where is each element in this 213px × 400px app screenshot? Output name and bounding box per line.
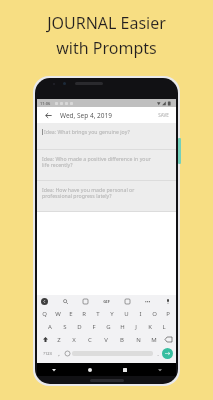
button[interactable]: E (64, 307, 77, 320)
staticText: O (152, 310, 157, 318)
staticText: , (58, 350, 60, 358)
button[interactable]: J (129, 320, 143, 333)
button[interactable]: B (114, 333, 130, 346)
button[interactable]: Period (153, 346, 162, 361)
button[interactable]: Home (85, 365, 94, 374)
staticText: C (88, 336, 92, 344)
staticText: M (151, 336, 157, 344)
button[interactable]: Shift (39, 333, 51, 346)
staticText: X (72, 336, 76, 344)
button[interactable]: W (51, 307, 64, 320)
button[interactable]: ⋯ (144, 297, 152, 306)
staticText: B (120, 336, 124, 344)
button[interactable]: Recents (120, 365, 129, 374)
button[interactable]: ?123 (40, 346, 54, 361)
button[interactable]: Idea: What brings you genuine joy? (37, 123, 176, 149)
button[interactable]: X (66, 333, 82, 346)
button[interactable]: Stickers (81, 297, 89, 305)
staticText: D (77, 323, 82, 331)
button[interactable]: U (119, 307, 133, 320)
button[interactable]: Back (49, 365, 58, 374)
button[interactable]: F (87, 320, 101, 333)
staticText: W (55, 310, 61, 318)
staticText: ⋯ (145, 298, 151, 305)
staticText: H (120, 323, 125, 331)
button[interactable]: Voice input (164, 297, 172, 305)
staticText: Idea: How have you made personal or prof… (42, 186, 135, 200)
button[interactable]: V (98, 333, 114, 346)
staticText: R (82, 310, 86, 318)
button[interactable]: D (72, 320, 87, 333)
button[interactable]: Y (105, 307, 119, 320)
staticText: U (124, 310, 129, 318)
button[interactable]: R (77, 307, 91, 320)
button[interactable]: K (143, 320, 157, 333)
button[interactable]: Idea: How have you made personal or prof… (37, 181, 176, 211)
button[interactable]: Comma (54, 346, 63, 361)
button[interactable]: Q (38, 307, 51, 320)
staticText: E (69, 310, 73, 318)
button[interactable]: Enter (162, 348, 173, 359)
staticText: S (63, 323, 67, 331)
button[interactable]: T (91, 307, 105, 320)
staticText: J (135, 323, 137, 331)
staticText: . (157, 350, 159, 358)
staticText: I (139, 310, 142, 318)
button[interactable]: H (115, 320, 129, 333)
staticText: Y (110, 310, 114, 318)
staticText: P (166, 310, 170, 318)
button[interactable]: Emoji (63, 346, 72, 361)
button[interactable]: Clipboard (123, 297, 131, 305)
button[interactable]: Idea: Who made a positive difference in … (37, 150, 176, 180)
staticText: GIF (103, 299, 110, 304)
button[interactable]: M (146, 333, 162, 346)
button[interactable]: Hide keyboard (156, 366, 164, 374)
button[interactable]: Collapse toolbar (41, 298, 48, 305)
button[interactable]: G (101, 320, 115, 333)
staticText: Wed, Sep 4, 2019 (60, 111, 112, 120)
staticText: N (136, 336, 141, 344)
button[interactable]: C (82, 333, 98, 346)
button[interactable]: N (130, 333, 146, 346)
staticText: Idea: Who made a positive difference in … (42, 155, 151, 169)
staticText: L (162, 323, 166, 331)
button[interactable]: Z (51, 333, 66, 346)
staticText: A (48, 323, 52, 331)
button[interactable]: GIF (102, 298, 111, 305)
staticText: ?123 (43, 351, 52, 356)
staticText: Idea: What brings you genuine joy? (44, 128, 130, 135)
staticText: Z (57, 336, 61, 344)
button[interactable]: Backspace (162, 333, 174, 346)
button[interactable]: P (161, 307, 175, 320)
button[interactable]: L (157, 320, 171, 333)
staticText: with Prompts (56, 37, 157, 59)
button[interactable]: Back (42, 109, 54, 121)
staticText: Q (42, 310, 47, 318)
button[interactable]: S (57, 320, 72, 333)
button[interactable]: Search (61, 297, 69, 305)
staticText: SAVE (158, 112, 169, 118)
staticText: JOURNAL Easier (47, 12, 166, 34)
button[interactable]: O (147, 307, 161, 320)
staticText: 11:06 (40, 101, 51, 106)
button[interactable]: A (42, 320, 57, 333)
staticText: K (148, 323, 152, 331)
button[interactable]: SAVE (156, 110, 171, 120)
staticText: T (96, 310, 100, 318)
staticText: F (92, 323, 96, 331)
button[interactable]: I (133, 307, 147, 320)
staticText: V (104, 336, 108, 344)
staticText: G (106, 323, 111, 331)
